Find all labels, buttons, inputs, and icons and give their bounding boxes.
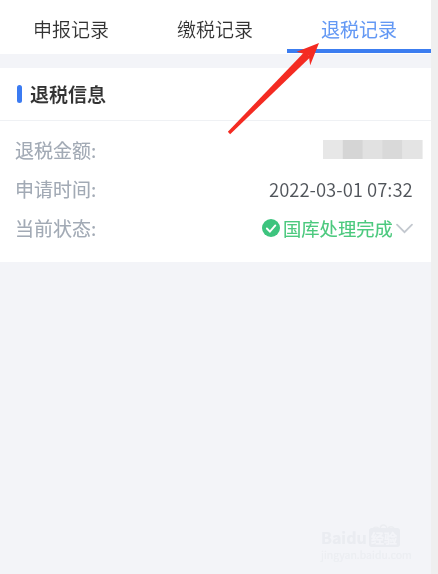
other: 已完成 [262,219,280,237]
staticText: 申请时间: [15,175,97,203]
staticText: 缴税记录 [177,15,254,43]
other: 展开 [396,221,413,235]
button[interactable]: 申请时间: [15,169,413,208]
button[interactable]: 缴税记录 [143,0,287,54]
staticText: Baidu [321,525,367,547]
staticText: 退税信息 [30,80,107,108]
staticText: 退税记录 [321,15,398,43]
button[interactable]: 当前状态: [15,208,413,247]
staticText: 经验 [371,528,398,547]
staticText: 国库处理完成 [283,215,393,241]
button[interactable]: 退税金额: [15,130,413,169]
staticText: 申报记录 [33,15,110,43]
staticText: 当前状态: [15,214,97,242]
button[interactable]: 申报记录 [0,0,143,54]
staticText: 退税金额: [15,136,97,164]
staticText: 2022-03-01 07:32 [269,176,413,202]
button[interactable]: 退税记录 [287,0,431,54]
